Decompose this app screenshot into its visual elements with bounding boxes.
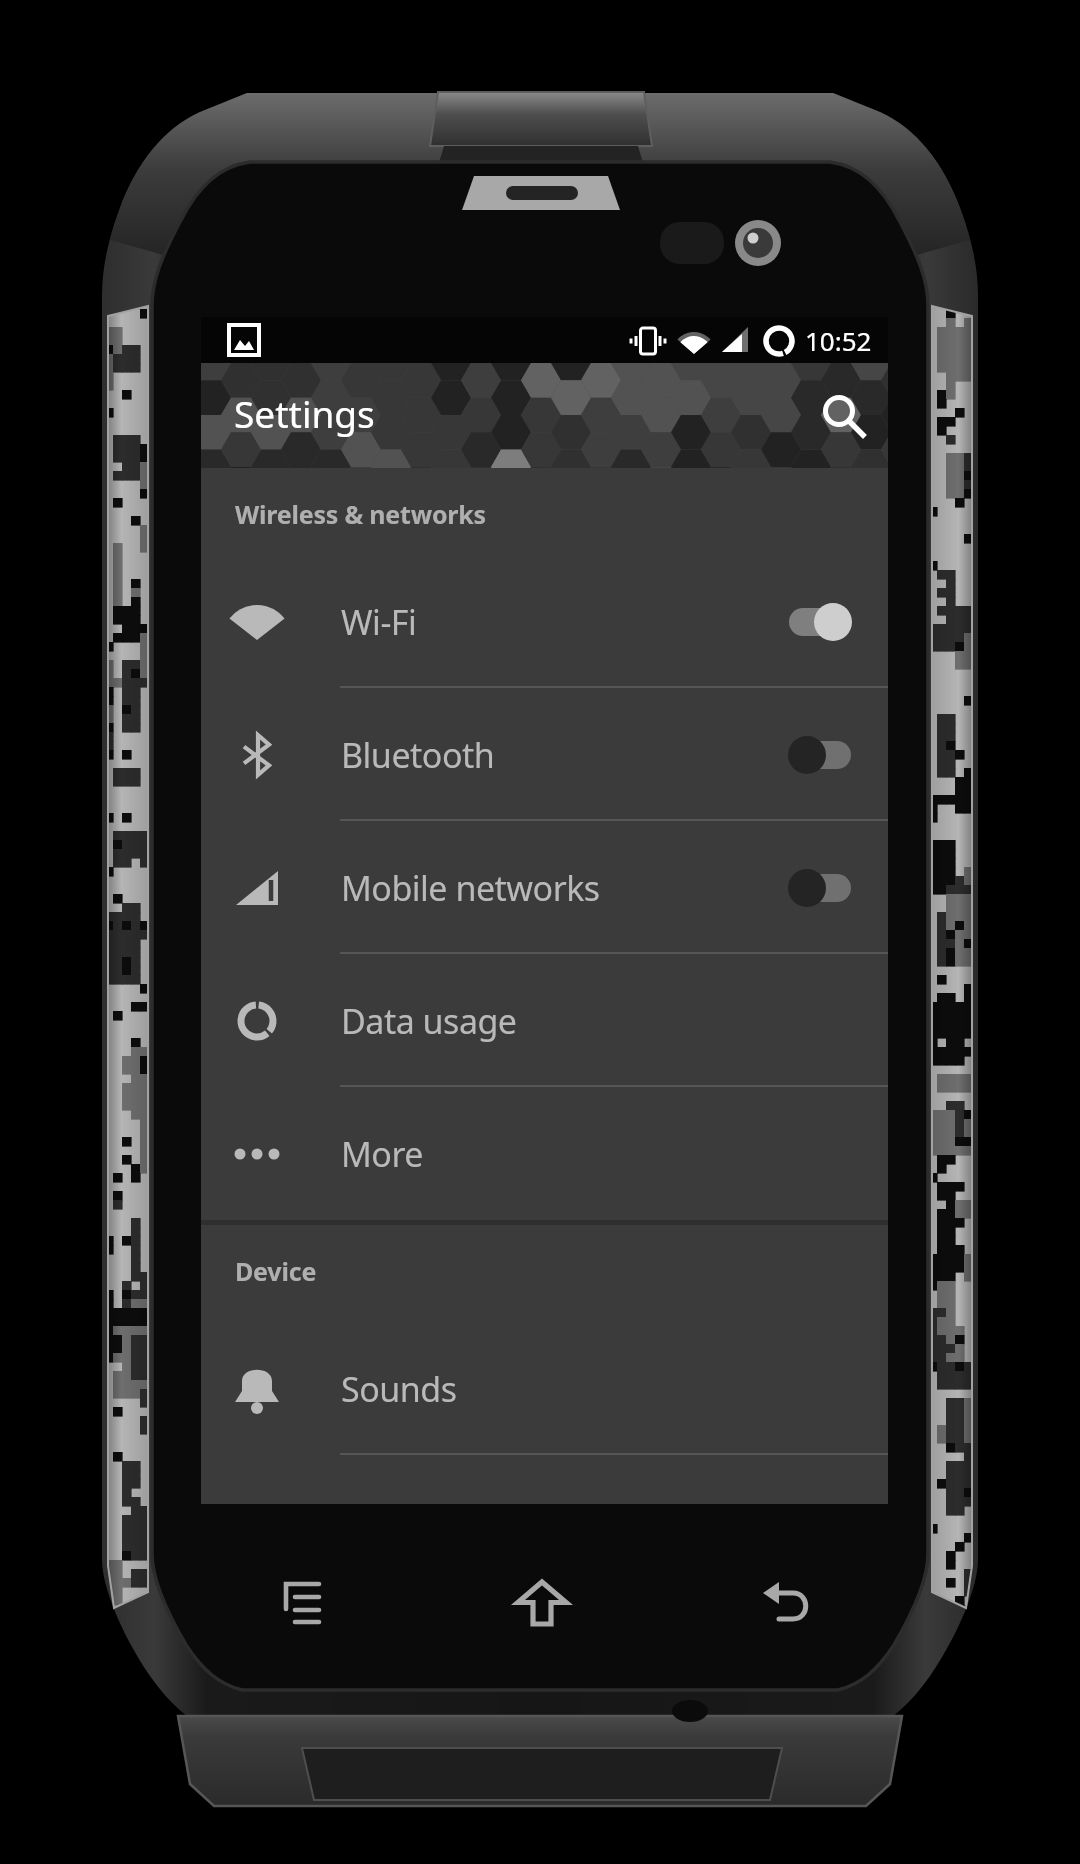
staticText: 10:52 (805, 323, 872, 358)
button[interactable]: Wi-Fi (201, 555, 888, 688)
staticText: Mobile networks (341, 865, 600, 911)
button[interactable]: Mobile networks (201, 821, 888, 954)
button[interactable]: Data usage (201, 954, 888, 1087)
staticText: Data usage (341, 998, 517, 1044)
staticText: Wi-Fi (341, 599, 417, 645)
button[interactable]: Back (735, 1553, 835, 1653)
button[interactable]: Menu (252, 1553, 352, 1653)
staticText: Bluetooth (341, 732, 495, 778)
button[interactable]: Search (812, 384, 876, 448)
button[interactable]: Sounds (201, 1322, 888, 1455)
button[interactable]: Bluetooth (201, 688, 888, 821)
staticText: Settings (234, 388, 375, 438)
staticText: More (341, 1131, 423, 1177)
button[interactable]: More (201, 1087, 888, 1220)
staticText: Sounds (341, 1366, 457, 1412)
button[interactable]: Home (492, 1553, 592, 1653)
staticText: Wireless & networks (235, 497, 486, 531)
staticText: Device (235, 1254, 317, 1288)
